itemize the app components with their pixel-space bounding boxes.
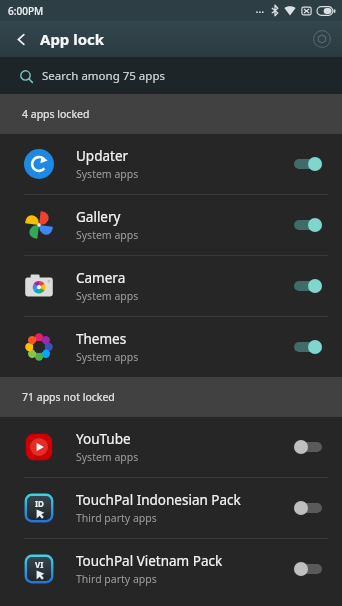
staticText: System apps [76,167,139,181]
staticText: TouchPal Vietnam Pack [76,552,223,570]
staticText: VI [35,559,44,570]
staticText: System apps [76,289,139,303]
button[interactable]: Lock off for TouchPal Vietnam Pack [288,554,328,584]
button[interactable]: Gallery [0,195,342,255]
button[interactable]: Lock on for Themes [288,332,328,362]
staticText: TouchPal Indonesian Pack [76,491,241,509]
button[interactable]: VI [0,539,342,599]
staticText: System apps [76,228,139,242]
staticText: Themes [76,330,127,348]
staticText: System apps [76,350,139,364]
staticText: 6:00PM [8,4,44,18]
staticText: Third party apps [76,511,157,525]
button[interactable]: Search among 75 apps [0,57,342,94]
button[interactable]: Lock on for Gallery [288,210,328,240]
button[interactable]: YouTube [0,417,342,477]
staticText: 4 apps locked [22,107,90,121]
staticText: App lock [40,29,105,49]
button[interactable]: Lock off for TouchPal Indonesian Pack [288,493,328,523]
staticText: Updater [76,147,129,165]
button[interactable]: Themes [0,317,342,377]
staticText: Search among 75 apps [42,68,165,84]
button[interactable]: Lock off for YouTube [288,432,328,462]
button[interactable]: Camera [0,256,342,316]
staticText: YouTube [76,430,131,448]
staticText: 71 apps not locked [22,390,115,404]
button[interactable]: Lock on for Camera [288,271,328,301]
staticText: Camera [76,269,126,287]
button[interactable]: Back [6,24,36,54]
staticText: Gallery [76,208,121,226]
staticText: Third party apps [76,572,157,586]
button[interactable]: ID [0,478,342,538]
button[interactable]: Settings [309,26,335,52]
button[interactable]: Lock on for Updater [288,149,328,179]
staticText: ID [35,498,44,509]
staticText: System apps [76,450,139,464]
button[interactable]: Updater [0,134,342,194]
